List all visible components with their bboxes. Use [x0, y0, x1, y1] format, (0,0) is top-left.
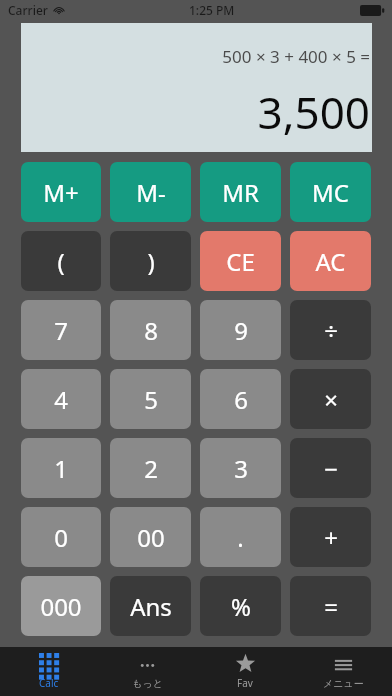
button[interactable]: Calc — [0, 647, 98, 696]
staticText: 3,500 — [257, 82, 370, 142]
button[interactable]: 000 — [21, 576, 101, 636]
button[interactable]: 8 — [110, 300, 191, 360]
staticText: 2 — [144, 452, 158, 485]
staticText: 000 — [40, 590, 82, 623]
button[interactable]: 1 — [21, 438, 101, 498]
button[interactable]: もっと — [98, 647, 196, 696]
button[interactable]: − — [290, 438, 371, 498]
staticText: AC — [315, 245, 346, 278]
button[interactable]: CE — [200, 231, 281, 291]
button[interactable]: ( — [21, 231, 101, 291]
staticText: 500 × 3 + 400 × 5 = — [222, 45, 370, 68]
staticText: MR — [222, 176, 259, 209]
staticText: CE — [226, 245, 255, 278]
button[interactable]: . — [200, 507, 281, 567]
staticText: M- — [136, 176, 166, 209]
button[interactable]: AC — [290, 231, 371, 291]
button[interactable]: 0 — [21, 507, 101, 567]
staticText: × — [324, 383, 338, 416]
staticText: メニュー — [323, 677, 364, 690]
staticText: 1:25 PM — [189, 2, 235, 18]
staticText: % — [231, 590, 251, 623]
staticText: Fav — [237, 676, 253, 690]
button[interactable]: Fav — [196, 647, 294, 696]
button[interactable]: + — [290, 507, 371, 567]
staticText: M+ — [43, 176, 79, 209]
button[interactable]: % — [200, 576, 281, 636]
button[interactable]: MC — [290, 162, 371, 222]
button[interactable]: = — [290, 576, 371, 636]
staticText: 9 — [234, 314, 248, 347]
button[interactable]: Ans — [110, 576, 191, 636]
button[interactable]: 6 — [200, 369, 281, 429]
staticText: 00 — [137, 521, 165, 554]
staticText: ( — [57, 245, 65, 278]
button[interactable]: M- — [110, 162, 191, 222]
staticText: 5 — [144, 383, 158, 416]
button[interactable]: ) — [110, 231, 191, 291]
staticText: = — [324, 590, 338, 623]
button[interactable]: 5 — [110, 369, 191, 429]
staticText: 8 — [144, 314, 158, 347]
staticText: 1 — [54, 452, 68, 485]
staticText: Carrier — [8, 2, 48, 18]
staticText: − — [324, 452, 338, 485]
staticText: + — [324, 521, 338, 554]
button[interactable]: 3 — [200, 438, 281, 498]
button[interactable]: × — [290, 369, 371, 429]
staticText: 4 — [54, 383, 68, 416]
staticText: . — [237, 521, 244, 554]
button[interactable]: 4 — [21, 369, 101, 429]
staticText: 7 — [54, 314, 68, 347]
button[interactable]: ÷ — [290, 300, 371, 360]
staticText: MC — [312, 176, 349, 209]
staticText: ÷ — [324, 314, 338, 347]
button[interactable]: メニュー — [294, 647, 392, 696]
staticText: Calc — [39, 676, 59, 690]
button[interactable]: 2 — [110, 438, 191, 498]
button[interactable]: 7 — [21, 300, 101, 360]
staticText: もっと — [132, 677, 163, 690]
staticText: 0 — [54, 521, 68, 554]
button[interactable]: 9 — [200, 300, 281, 360]
staticText: 6 — [234, 383, 248, 416]
staticText: 3 — [234, 452, 248, 485]
button[interactable]: M+ — [21, 162, 101, 222]
staticText: ) — [147, 245, 155, 278]
button[interactable]: MR — [200, 162, 281, 222]
button[interactable]: 00 — [110, 507, 191, 567]
staticText: Ans — [130, 590, 172, 623]
